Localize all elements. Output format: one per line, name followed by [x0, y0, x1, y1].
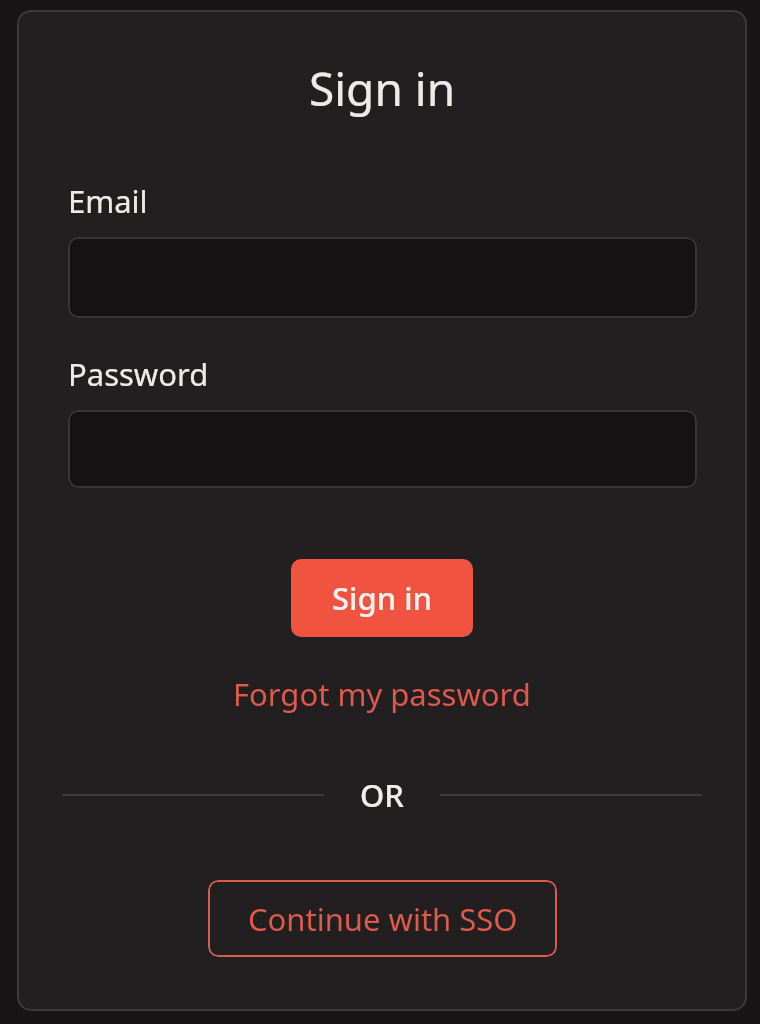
button[interactable]: Sign in: [291, 559, 473, 637]
button[interactable]: Forgot my password: [233, 673, 531, 715]
button[interactable]: [68, 237, 697, 318]
staticText: Sign in: [332, 577, 432, 619]
staticText: Password: [68, 353, 209, 395]
staticText: OR: [360, 774, 404, 816]
staticText: Email: [68, 180, 148, 222]
staticText: Continue with SSO: [248, 898, 518, 940]
button[interactable]: Continue with SSO: [208, 880, 557, 957]
button[interactable]: [68, 410, 697, 488]
staticText: Sign in: [309, 57, 456, 120]
staticText: Forgot my password: [233, 673, 531, 715]
